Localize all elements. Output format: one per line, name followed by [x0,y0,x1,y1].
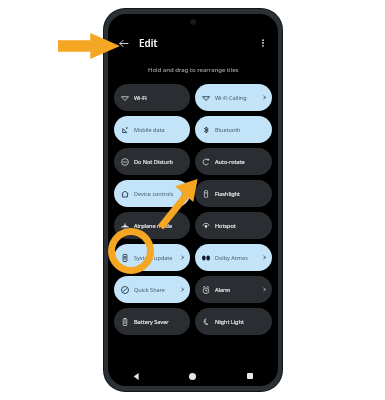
button[interactable]: Quick Share [114,276,190,303]
staticText: Quick Share [134,286,165,293]
button[interactable]: Dolby Atmos [195,244,272,271]
button[interactable]: Do Not Disturb [114,148,190,175]
staticText: Hotspot [215,222,236,229]
staticText: Night Light [215,318,244,325]
button[interactable]: Auto-rotate [195,148,272,175]
button[interactable]: Night Light [195,308,272,335]
button[interactable]: More options [255,35,271,51]
staticText: Auto-rotate [215,158,245,165]
button[interactable]: Back [115,35,131,51]
staticText: Edit [139,36,158,50]
staticText: Hold and drag to rearrange tiles [148,66,239,74]
button[interactable]: System update [114,244,190,271]
button[interactable]: Mobile data [114,116,190,143]
button[interactable]: Back [108,366,164,386]
button[interactable]: Device controls [114,180,190,207]
staticText: System update [134,254,173,261]
staticText: Alarm [215,286,231,293]
button[interactable]: Wi-Fi Calling [195,84,272,111]
staticText: Mobile data [134,126,165,133]
staticText: Flashlight [215,190,240,197]
staticText: Wi-Fi Calling [215,94,247,101]
button[interactable]: Airplane mode [114,212,190,239]
button[interactable]: Battery Saver [114,308,190,335]
button[interactable]: Bluetooth [195,116,272,143]
button[interactable]: Recents [221,366,278,386]
button[interactable]: Flashlight [195,180,272,207]
button[interactable]: Wi-Fi [114,84,190,111]
staticText: Wi-Fi [134,94,147,101]
staticText: Airplane mode [134,222,172,229]
button[interactable]: Alarm [195,276,272,303]
staticText: Dolby Atmos [215,254,248,261]
staticText: Bluetooth [215,126,241,133]
staticText: Do Not Disturb [134,158,173,165]
staticText: Device controls [134,190,174,197]
staticText: Battery Saver [134,318,169,325]
button[interactable]: Hotspot [195,212,272,239]
button[interactable]: Home [164,366,221,386]
